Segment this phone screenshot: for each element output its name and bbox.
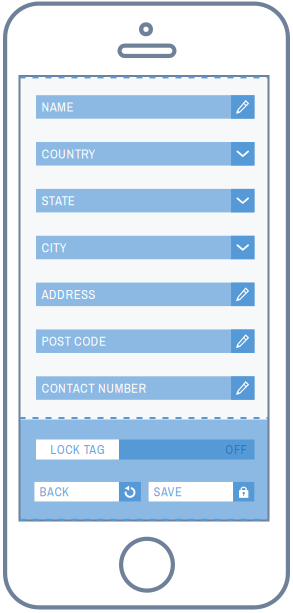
staticText: BACK xyxy=(39,483,69,500)
staticText: CONTACT NUMBER xyxy=(41,379,146,397)
button[interactable]: COUNTRY xyxy=(36,142,254,166)
button[interactable]: SAVE xyxy=(149,482,254,501)
staticText: STATE xyxy=(41,192,75,209)
button[interactable]: NAME xyxy=(36,95,254,119)
button[interactable]: STATE xyxy=(36,189,254,212)
button[interactable]: CONTACT NUMBER xyxy=(36,376,254,400)
staticText: LOCK TAG xyxy=(50,441,105,458)
staticText: OFF xyxy=(225,441,246,458)
button[interactable]: ADDRESS xyxy=(36,283,254,306)
button[interactable]: POST CODE xyxy=(36,329,254,353)
staticText: POST CODE xyxy=(41,333,106,350)
staticText: COUNTRY xyxy=(41,145,95,162)
staticText: SAVE xyxy=(154,483,182,500)
staticText: ADDRESS xyxy=(41,286,95,303)
staticText: CITY xyxy=(41,239,66,256)
button[interactable]: BACK xyxy=(34,482,141,501)
staticText: NAME xyxy=(41,98,73,115)
button[interactable]: CITY xyxy=(36,236,254,259)
button[interactable]: LOCK TAG xyxy=(36,439,254,459)
